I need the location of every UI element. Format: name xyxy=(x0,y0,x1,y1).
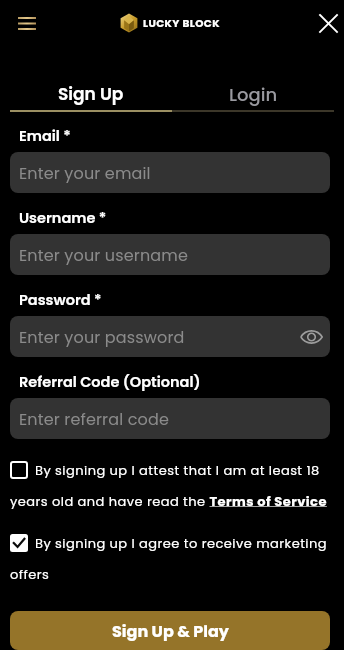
button[interactable]: Show password xyxy=(297,323,325,351)
staticText: Username * xyxy=(19,208,107,228)
staticText: Enter your username xyxy=(19,244,188,266)
button[interactable]: Login xyxy=(172,80,334,108)
staticText: Password * xyxy=(19,290,102,310)
button[interactable]: Enter referral code xyxy=(10,398,330,439)
button[interactable]: Enter your email xyxy=(10,152,330,193)
staticText: Login xyxy=(229,82,278,107)
button[interactable]: Menu xyxy=(10,6,44,40)
button[interactable]: Sign Up & Play xyxy=(10,611,330,650)
staticText: Enter referral code xyxy=(19,408,170,430)
button[interactable]: Enter your username xyxy=(10,234,330,275)
staticText: Referral Code (Optional) xyxy=(19,372,201,392)
staticText: Sign Up xyxy=(58,82,124,106)
button[interactable]: Enter your password xyxy=(10,316,330,357)
button[interactable]: By signing up I attest that I am at leas… xyxy=(10,461,330,510)
staticText: Enter your email xyxy=(19,162,151,184)
staticText: Sign Up & Play xyxy=(112,620,229,642)
staticText: Enter your password xyxy=(19,326,185,348)
button[interactable]: Close xyxy=(314,9,342,37)
staticText: Email * xyxy=(19,126,71,146)
staticText: LUCKY BLOCK xyxy=(143,16,220,31)
button[interactable]: Sign Up xyxy=(10,80,172,108)
button[interactable]: By signing up I agree to receive marketi… xyxy=(10,534,330,583)
